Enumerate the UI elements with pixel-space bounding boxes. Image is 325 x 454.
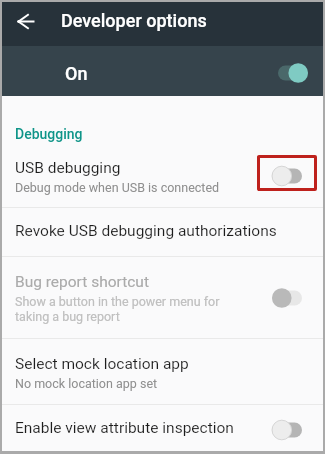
staticText: No mock location app set xyxy=(15,376,158,391)
staticText: Debugging xyxy=(15,126,83,142)
staticText: USB debugging xyxy=(15,159,121,177)
button[interactable]: USB debugging xyxy=(2,144,323,207)
staticText: Bug report shortcut xyxy=(15,273,149,291)
staticText: Enable view attribute inspection xyxy=(15,419,234,437)
button[interactable]: Select mock location app xyxy=(2,339,323,404)
button[interactable] xyxy=(2,2,50,46)
staticText: On xyxy=(65,63,88,84)
button[interactable]: On xyxy=(2,46,323,96)
staticText: Revoke USB debugging authorizations xyxy=(15,222,277,240)
staticText: Show a button in the power menu for xyxy=(15,294,220,309)
staticText: taking a bug report xyxy=(15,309,120,324)
button[interactable]: Enable view attribute inspection xyxy=(2,405,323,451)
staticText: Developer options xyxy=(61,10,207,31)
staticText: Select mock location app xyxy=(15,355,189,373)
button[interactable]: Revoke USB debugging authorizations xyxy=(2,208,323,256)
button[interactable]: Bug report shortcut xyxy=(2,257,323,338)
staticText: Debug mode when USB is connected xyxy=(15,180,220,195)
